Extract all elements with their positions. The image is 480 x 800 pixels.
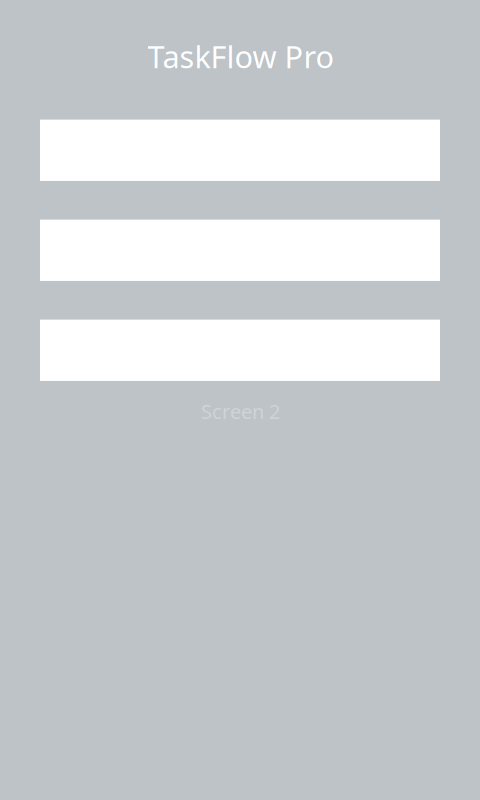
staticText: TaskFlow Pro: [147, 36, 334, 77]
staticText: Screen 2: [201, 398, 280, 424]
